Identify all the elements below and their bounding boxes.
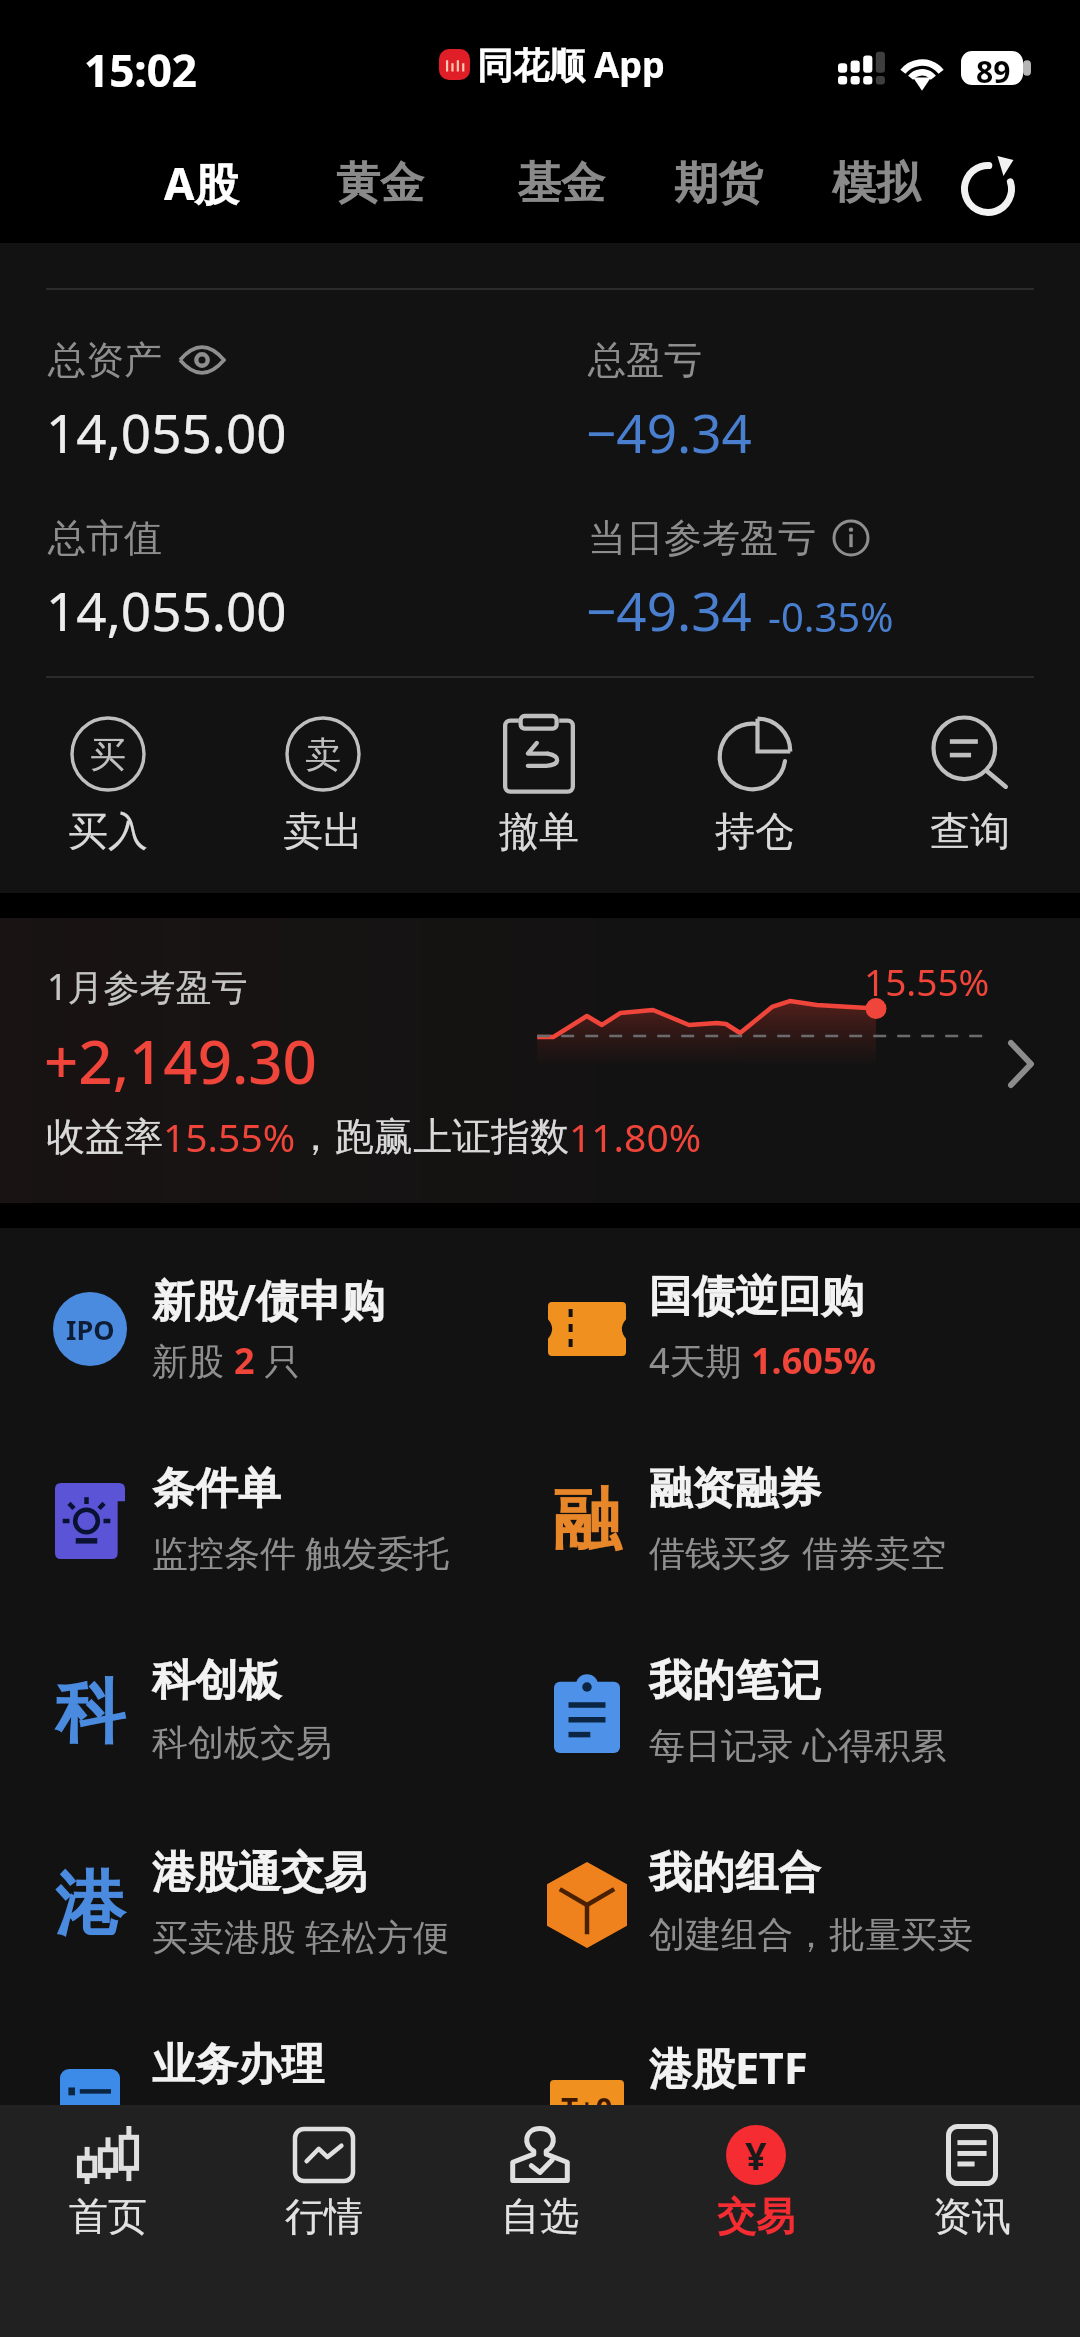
staticText: 15:02 xyxy=(84,40,198,100)
staticText: 只 xyxy=(255,1336,301,1385)
staticText: 当日参考盈亏 xyxy=(588,514,816,562)
button[interactable]: 业务办理 xyxy=(0,2018,497,2204)
staticText: +2,149.30 xyxy=(44,1020,317,1102)
staticText: -0.35% xyxy=(768,589,894,643)
button[interactable]: IPO xyxy=(0,1250,497,1436)
staticText: 卖出 xyxy=(283,806,363,856)
button[interactable]: 基金 xyxy=(496,138,626,228)
staticText: 总资产 xyxy=(48,336,162,384)
staticText: 卖 xyxy=(305,732,341,777)
staticText: 11.80% xyxy=(569,1110,702,1163)
staticText: 买卖港股 轻松方便 xyxy=(152,1912,450,1961)
staticText: 科 xyxy=(55,1669,125,1757)
staticText: 每日记录 心得积累 xyxy=(649,1720,947,1769)
button[interactable]: 买 xyxy=(8,700,208,860)
staticText: 4天期 xyxy=(649,1336,751,1385)
button[interactable]: T+0 xyxy=(497,2018,994,2204)
staticText: 15.55% xyxy=(864,956,990,1006)
button[interactable]: 撤单 xyxy=(439,700,639,860)
staticText: 买 xyxy=(90,732,126,777)
button[interactable]: 我的笔记 xyxy=(497,1634,994,1820)
staticText: 收益率 xyxy=(46,1112,163,1161)
staticText: 港 xyxy=(55,1861,125,1949)
staticText: 新股 xyxy=(152,1336,234,1385)
staticText: 买入 xyxy=(68,806,148,856)
staticText: 总盈亏 xyxy=(588,336,702,384)
staticText: A股 xyxy=(164,153,239,213)
staticText: 2 xyxy=(234,1336,255,1385)
staticText: 融资融券 xyxy=(649,1462,821,1516)
staticText: 我的笔记 xyxy=(649,1654,821,1708)
button[interactable]: 行情 xyxy=(216,2105,432,2265)
staticText: −49.34 xyxy=(586,396,752,468)
staticText: 创建组合，批量买卖 xyxy=(649,1912,973,1957)
button[interactable]: 1月参考盈亏 xyxy=(0,918,1080,1203)
staticText: 查询 xyxy=(930,806,1010,856)
button[interactable]: 自选 xyxy=(432,2105,648,2265)
staticText: 我的组合 xyxy=(649,1846,821,1900)
staticText: ¥ xyxy=(745,2129,767,2181)
staticText: 自选 xyxy=(501,2192,579,2241)
button[interactable]: 港 xyxy=(0,1826,497,2012)
button[interactable]: 我的组合 xyxy=(497,1826,994,2012)
staticText: 资讯 xyxy=(933,2192,1011,2241)
staticText: 1.605% xyxy=(751,1336,876,1385)
button[interactable]: 显示或隐藏金额 xyxy=(178,345,226,375)
staticText: ， xyxy=(296,1112,335,1161)
staticText: 14,055.00 xyxy=(46,396,287,468)
staticText: 首页 xyxy=(69,2192,147,2241)
staticText: 科创板交易 xyxy=(152,1720,332,1765)
staticText: 持仓 xyxy=(715,806,795,856)
button[interactable]: 总资产 xyxy=(48,336,226,384)
button[interactable]: 查询 xyxy=(870,700,1070,860)
staticText: 期货 xyxy=(674,156,762,211)
staticText: 15.55% xyxy=(163,1110,296,1163)
staticText: 89 xyxy=(976,51,1011,85)
button[interactable]: 黄金 xyxy=(315,138,445,228)
button[interactable]: 盈亏说明 xyxy=(832,519,870,557)
button[interactable]: 持仓 xyxy=(655,700,855,860)
staticText: 总市值 xyxy=(48,514,162,562)
staticText: IPO xyxy=(66,1311,115,1348)
button[interactable]: 刷新 xyxy=(944,145,1032,233)
staticText: 同花顺 App xyxy=(477,40,665,89)
other: 详情 xyxy=(1008,1040,1034,1088)
staticText: 国债逆回购 xyxy=(649,1270,864,1324)
staticText: 新股/债申购 xyxy=(152,1270,385,1329)
staticText: 港股ETF xyxy=(649,2038,808,2097)
button[interactable]: A股 xyxy=(136,138,266,228)
staticText: 行情 xyxy=(285,2192,363,2241)
button[interactable]: 资讯 xyxy=(864,2105,1080,2265)
staticText: 模拟 xyxy=(832,156,920,211)
button[interactable]: 期货 xyxy=(653,138,783,228)
button[interactable]: 首页 xyxy=(0,2105,216,2265)
staticText: 业务办理 xyxy=(152,2038,324,2092)
staticText: 1月参考盈亏 xyxy=(47,962,248,1011)
staticText: 交易 xyxy=(717,2192,795,2241)
staticText: 监控条件 触发委托 xyxy=(152,1528,450,1577)
button[interactable]: 融 xyxy=(497,1442,994,1628)
button[interactable]: 科 xyxy=(0,1634,497,1820)
button[interactable]: 卖 xyxy=(223,700,423,860)
staticText: 条件单 xyxy=(152,1462,281,1516)
staticText: T+0 xyxy=(561,2088,613,2129)
staticText: 港股通交易 xyxy=(152,1846,367,1900)
button[interactable]: 国债逆回购 xyxy=(497,1250,994,1436)
staticText: 基金 xyxy=(517,156,605,211)
button[interactable]: 条件单 xyxy=(0,1442,497,1628)
staticText: 科创板 xyxy=(152,1654,281,1708)
staticText: 借钱买多 借券卖空 xyxy=(649,1528,947,1577)
button[interactable]: 模拟 xyxy=(811,138,941,228)
staticText: 14,055.00 xyxy=(46,574,287,646)
staticText: 融 xyxy=(553,1478,621,1564)
staticText: −49.34 xyxy=(586,574,752,646)
staticText: 跑赢上证指数 xyxy=(335,1112,569,1161)
staticText: 撤单 xyxy=(499,806,579,856)
staticText: 黄金 xyxy=(336,156,424,211)
button[interactable]: ¥ xyxy=(648,2105,864,2265)
